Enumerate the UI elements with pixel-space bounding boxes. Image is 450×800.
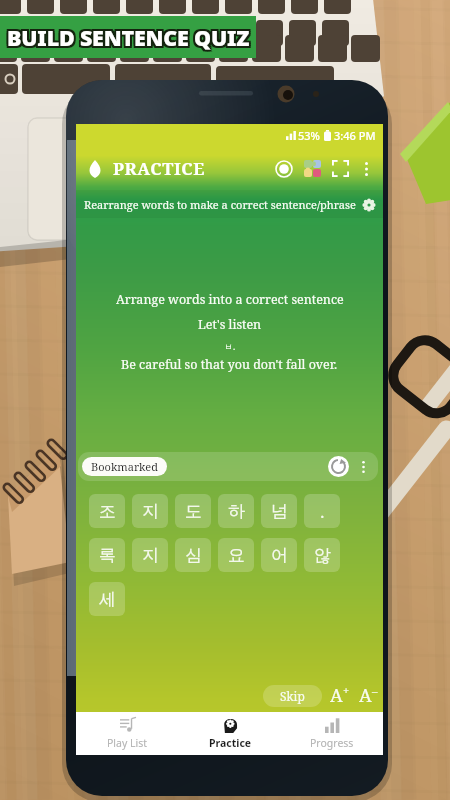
button[interactable]: 지 [132, 538, 168, 572]
button[interactable]: Skip [263, 685, 322, 707]
staticText: 심 [185, 545, 202, 566]
staticText: PRACTICE [113, 157, 205, 180]
staticText: Skip [280, 688, 305, 704]
button[interactable]: 넘 [261, 494, 297, 528]
button[interactable]: More [356, 459, 371, 474]
button[interactable]: 록 [89, 538, 125, 572]
staticText: 요 [228, 545, 245, 566]
staticText: . [320, 500, 325, 523]
button[interactable]: Decrease font size [359, 683, 378, 708]
staticText: A [359, 683, 372, 708]
button[interactable]: Record [272, 157, 296, 181]
staticText: 하 [228, 501, 245, 522]
staticText: Be careful so that you don't fall over. [121, 356, 338, 373]
staticText: 조 [99, 501, 116, 522]
staticText: Progress [310, 736, 354, 750]
staticText: 넘 [271, 501, 288, 522]
staticText: BUILD SENTENCE QUIZ [7, 25, 250, 54]
staticText: 53% [298, 128, 320, 143]
staticText: 지 [142, 545, 159, 566]
staticText: BUILD SENTENCE QUIZ [5, 23, 248, 52]
button[interactable]: Bookmarked [82, 457, 167, 476]
button[interactable]: Refresh [328, 456, 349, 477]
button[interactable]: . [304, 494, 340, 528]
staticText: A [330, 683, 343, 708]
button[interactable]: 도 [175, 494, 211, 528]
button[interactable]: More options [358, 161, 374, 177]
staticText: 도 [185, 501, 202, 522]
staticText: 어 [271, 545, 288, 566]
button[interactable]: Settings [361, 197, 376, 212]
staticText: BUILD SENTENCE QUIZ [7, 23, 250, 52]
button[interactable]: 요 [218, 538, 254, 572]
button[interactable]: Puzzle [303, 159, 322, 178]
button[interactable]: 조 [89, 494, 125, 528]
button[interactable]: 세 [89, 582, 125, 616]
staticText: Let's listen [198, 316, 262, 333]
staticText: 않 [314, 545, 331, 566]
button[interactable]: Practice [179, 712, 281, 755]
button[interactable]: 지 [132, 494, 168, 528]
staticText: 세 [99, 589, 116, 610]
button[interactable]: Play List [76, 712, 179, 755]
staticText: BUILD SENTENCE QUIZ [5, 25, 248, 54]
button[interactable]: 어 [261, 538, 297, 572]
staticText: 3:46 PM [334, 128, 376, 143]
staticText: BUILD SENTENCE QUIZ [9, 25, 252, 54]
staticText: ㅂ. [224, 340, 236, 352]
staticText: BUILD SENTENCE QUIZ [9, 23, 252, 52]
staticText: Rearrange words to make a correct senten… [84, 197, 356, 212]
staticText: 록 [99, 545, 116, 566]
staticText: BUILD SENTENCE QUIZ [7, 21, 250, 50]
staticText: Bookmarked [91, 459, 158, 474]
button[interactable]: Progress [281, 712, 383, 755]
button[interactable]: 심 [175, 538, 211, 572]
button[interactable]: 않 [304, 538, 340, 572]
staticText: 지 [142, 501, 159, 522]
staticText: + [343, 683, 350, 698]
staticText: Play List [107, 736, 148, 750]
staticText: BUILD SENTENCE QUIZ [9, 21, 252, 50]
staticText: BUILD SENTENCE QUIZ [5, 21, 248, 50]
staticText: Practice [209, 736, 252, 750]
button[interactable]: Increase font size [330, 683, 350, 708]
staticText: – [372, 683, 378, 698]
button[interactable]: Fullscreen [330, 158, 351, 179]
staticText: Arrange words into a correct sentence [116, 291, 344, 308]
button[interactable]: 하 [218, 494, 254, 528]
